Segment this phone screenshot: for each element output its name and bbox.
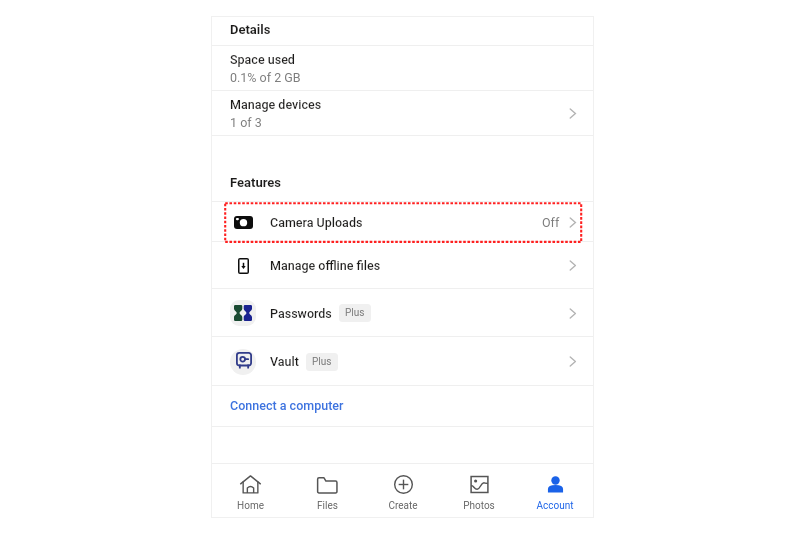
button[interactable]: Vault <box>212 337 593 386</box>
button[interactable]: Space used <box>212 46 593 91</box>
button[interactable]: Create <box>365 464 441 517</box>
staticText: Photos <box>463 500 495 512</box>
button[interactable]: Manage offline files <box>212 242 593 289</box>
button[interactable]: Account <box>517 464 593 517</box>
staticText: Home <box>237 500 264 512</box>
staticText: Off <box>542 215 560 230</box>
staticText: Space used <box>230 52 295 67</box>
staticText: Manage devices <box>230 97 322 112</box>
staticText: Vault <box>270 354 299 369</box>
staticText: 0.1% of 2 GB <box>230 70 301 85</box>
button[interactable]: Files <box>289 464 365 517</box>
button[interactable]: Camera Uploads <box>212 202 593 242</box>
button[interactable]: Home <box>212 464 289 517</box>
staticText: Connect a computer <box>230 398 344 413</box>
staticText: Create <box>388 500 418 512</box>
button[interactable]: Manage devices <box>212 91 593 136</box>
button[interactable]: Passwords <box>212 289 593 337</box>
staticText: Details <box>230 22 271 37</box>
staticText: Plus <box>345 307 365 319</box>
staticText: 1 of 3 <box>230 115 262 130</box>
staticText: Camera Uploads <box>270 215 363 230</box>
staticText: Account <box>536 500 574 512</box>
staticText: Features <box>230 175 282 190</box>
button[interactable]: Connect a computer <box>212 386 593 427</box>
button[interactable]: Photos <box>441 464 517 517</box>
staticText: Passwords <box>270 306 332 321</box>
staticText: Plus <box>312 356 332 368</box>
staticText: Files <box>317 500 338 512</box>
staticText: Manage offline files <box>270 258 381 273</box>
